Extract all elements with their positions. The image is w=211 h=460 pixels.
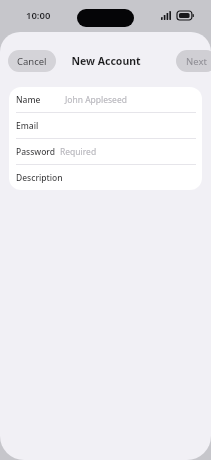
button[interactable]: Name [9, 87, 202, 112]
staticText: Name [16, 94, 41, 106]
button[interactable]: Password [9, 139, 202, 164]
button[interactable]: Email [9, 113, 202, 138]
staticText: Required [60, 146, 97, 158]
staticText: Password [16, 146, 56, 158]
staticText: Next [186, 55, 207, 68]
staticText: John Appleseed [65, 94, 127, 106]
button[interactable]: Cancel [8, 50, 56, 72]
staticText: Cancel [17, 55, 47, 68]
button[interactable]: Next [176, 50, 211, 72]
staticText: New Account [71, 54, 141, 68]
staticText: Description [16, 172, 63, 184]
staticText: 10:00 [26, 9, 51, 22]
button[interactable]: Description [9, 165, 202, 190]
staticText: Email [16, 120, 39, 132]
